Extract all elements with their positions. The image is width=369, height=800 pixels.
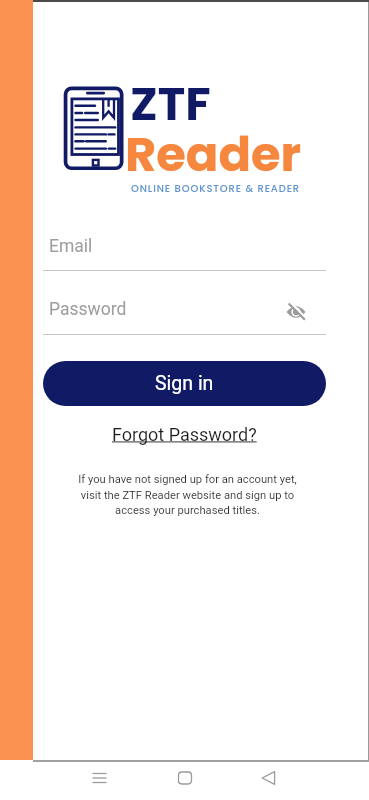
button[interactable] <box>170 764 200 794</box>
button[interactable]: Sign in <box>43 361 326 406</box>
staticText: Password <box>49 299 127 320</box>
button[interactable] <box>286 303 306 321</box>
staticText: If you have not signed up for an account… <box>3 473 369 517</box>
button[interactable]: Forgot Password? <box>112 424 257 445</box>
staticText: Reader <box>125 121 302 188</box>
staticText: ONLINE BOOKSTORE & READER <box>131 181 301 195</box>
button[interactable]: Password <box>43 294 326 335</box>
button[interactable] <box>85 764 115 794</box>
staticText: Email <box>49 236 93 257</box>
button[interactable] <box>254 764 284 794</box>
button[interactable]: Email <box>43 230 326 271</box>
staticText: ZTF <box>130 71 211 136</box>
staticText: Sign in <box>155 372 214 395</box>
